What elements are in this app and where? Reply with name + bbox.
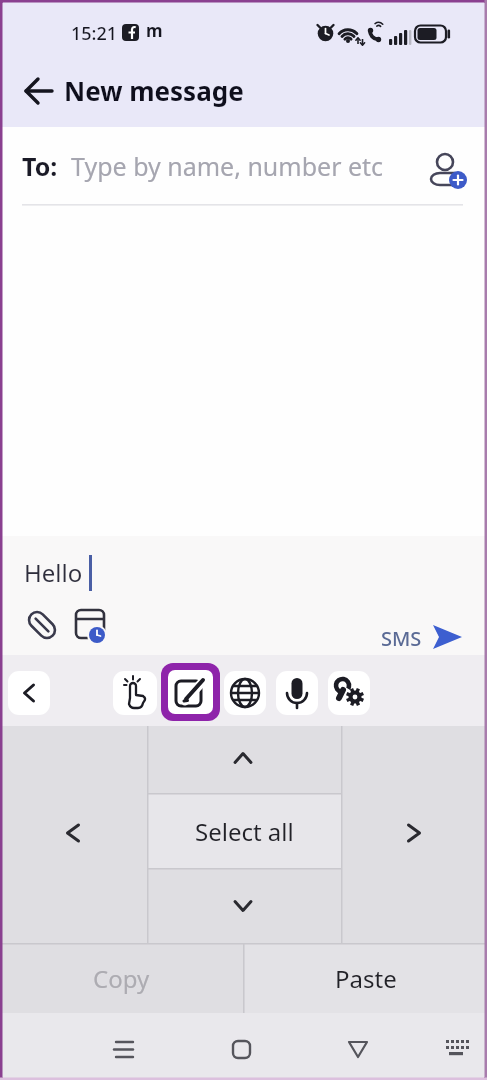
- staticText: Hello: [24, 556, 83, 589]
- button[interactable]: [14, 70, 58, 114]
- button[interactable]: [113, 671, 157, 715]
- button[interactable]: [100, 1025, 146, 1071]
- button[interactable]: [335, 1025, 381, 1071]
- button[interactable]: [276, 671, 318, 715]
- button[interactable]: [342, 726, 487, 943]
- staticText: 15:21: [71, 21, 118, 46]
- button[interactable]: [0, 726, 147, 943]
- staticText: SMS: [381, 625, 422, 652]
- button[interactable]: [424, 145, 474, 195]
- button[interactable]: [168, 670, 213, 714]
- button[interactable]: [224, 671, 266, 715]
- staticText: m: [146, 19, 163, 42]
- staticText: Select all: [195, 815, 294, 848]
- button[interactable]: [433, 1025, 479, 1071]
- button[interactable]: [148, 726, 341, 793]
- button[interactable]: Select all: [148, 794, 341, 868]
- button[interactable]: Paste: [244, 944, 487, 1013]
- button[interactable]: [148, 869, 341, 943]
- button[interactable]: [328, 671, 370, 715]
- button[interactable]: [424, 616, 468, 660]
- button[interactable]: [20, 604, 64, 648]
- staticText: To:: [22, 149, 58, 183]
- button[interactable]: [218, 1025, 264, 1071]
- button[interactable]: Copy: [0, 944, 243, 1013]
- button[interactable]: [8, 671, 50, 715]
- staticText: Copy: [93, 962, 150, 995]
- staticText: New message: [64, 73, 244, 108]
- staticText: Type by name, number etc: [71, 149, 384, 183]
- staticText: Paste: [335, 962, 397, 995]
- button[interactable]: [70, 604, 114, 648]
